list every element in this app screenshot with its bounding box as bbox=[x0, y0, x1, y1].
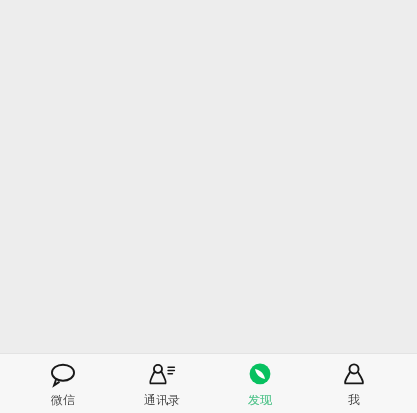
button[interactable]: Contacts bbox=[126, 354, 198, 413]
button[interactable]: Me bbox=[323, 354, 385, 413]
staticText: 通讯录 bbox=[144, 392, 180, 407]
button[interactable]: WeChat bbox=[32, 354, 94, 413]
staticText: 微信 bbox=[51, 392, 75, 407]
button[interactable]: Discover bbox=[229, 354, 291, 413]
staticText: 发现 bbox=[248, 392, 272, 407]
staticText: 我 bbox=[348, 392, 360, 407]
